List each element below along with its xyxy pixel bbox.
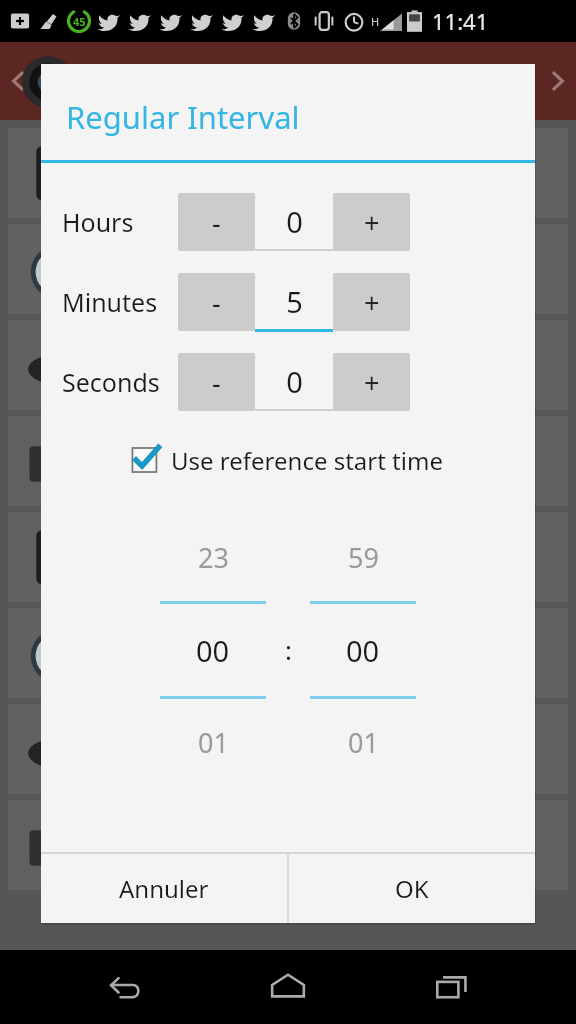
staticText: 01 [348,724,379,761]
staticText: 45 [73,14,86,29]
staticText: Hours [62,205,134,239]
button[interactable]: 0 [255,193,333,249]
button[interactable]: Decrease [178,193,255,251]
staticText: - [212,364,221,401]
button[interactable] [8,704,568,794]
button[interactable]: 0 [255,353,333,409]
button[interactable] [8,800,568,890]
button[interactable] [8,128,568,218]
button[interactable]: 01 [310,699,416,785]
staticText: + [364,364,380,401]
staticText: 0 [286,202,303,241]
button[interactable]: OK [289,854,535,923]
staticText: Use reference start time [171,444,443,477]
button[interactable]: Decrease [178,353,255,411]
button[interactable]: Increase [333,193,410,251]
staticText: H [371,14,380,29]
staticText: - [212,284,221,321]
button[interactable]: Decrease [178,273,255,331]
button[interactable]: Use reference start time [41,435,535,485]
staticText: + [364,204,380,241]
button[interactable]: 23 [160,513,266,601]
staticText: OK [395,872,429,905]
staticText: 23 [198,539,229,576]
button[interactable] [8,416,568,506]
staticText: 01 [198,724,229,761]
button[interactable]: Back [84,950,164,1024]
staticText: + [364,284,380,321]
button[interactable]: Increase [333,353,410,411]
staticText: 00 [196,631,230,670]
button[interactable]: Home [248,950,328,1024]
button[interactable]: Annuler [41,854,287,923]
button[interactable] [8,224,568,314]
button[interactable] [8,608,568,698]
button[interactable]: Increase [333,273,410,331]
button[interactable]: 5 [255,273,333,329]
staticText: Annuler [119,872,209,905]
staticText: 59 [348,539,379,576]
staticText: Seconds [62,365,160,399]
staticText: Minutes [62,285,158,319]
staticText: 5 [286,282,303,321]
staticText: 11:41 [432,6,489,36]
staticText: 0 [286,362,303,401]
button[interactable] [8,512,568,602]
button[interactable]: 01 [160,699,266,785]
staticText: 00 [346,631,380,670]
staticText: : [285,632,292,667]
staticText: - [212,204,221,241]
button[interactable]: Recent apps [412,950,492,1024]
button[interactable] [8,320,568,410]
staticText: Regular Interval [66,96,300,138]
button[interactable]: 59 [310,513,416,601]
button[interactable]: 00 [160,604,266,696]
button[interactable]: 00 [310,604,416,696]
